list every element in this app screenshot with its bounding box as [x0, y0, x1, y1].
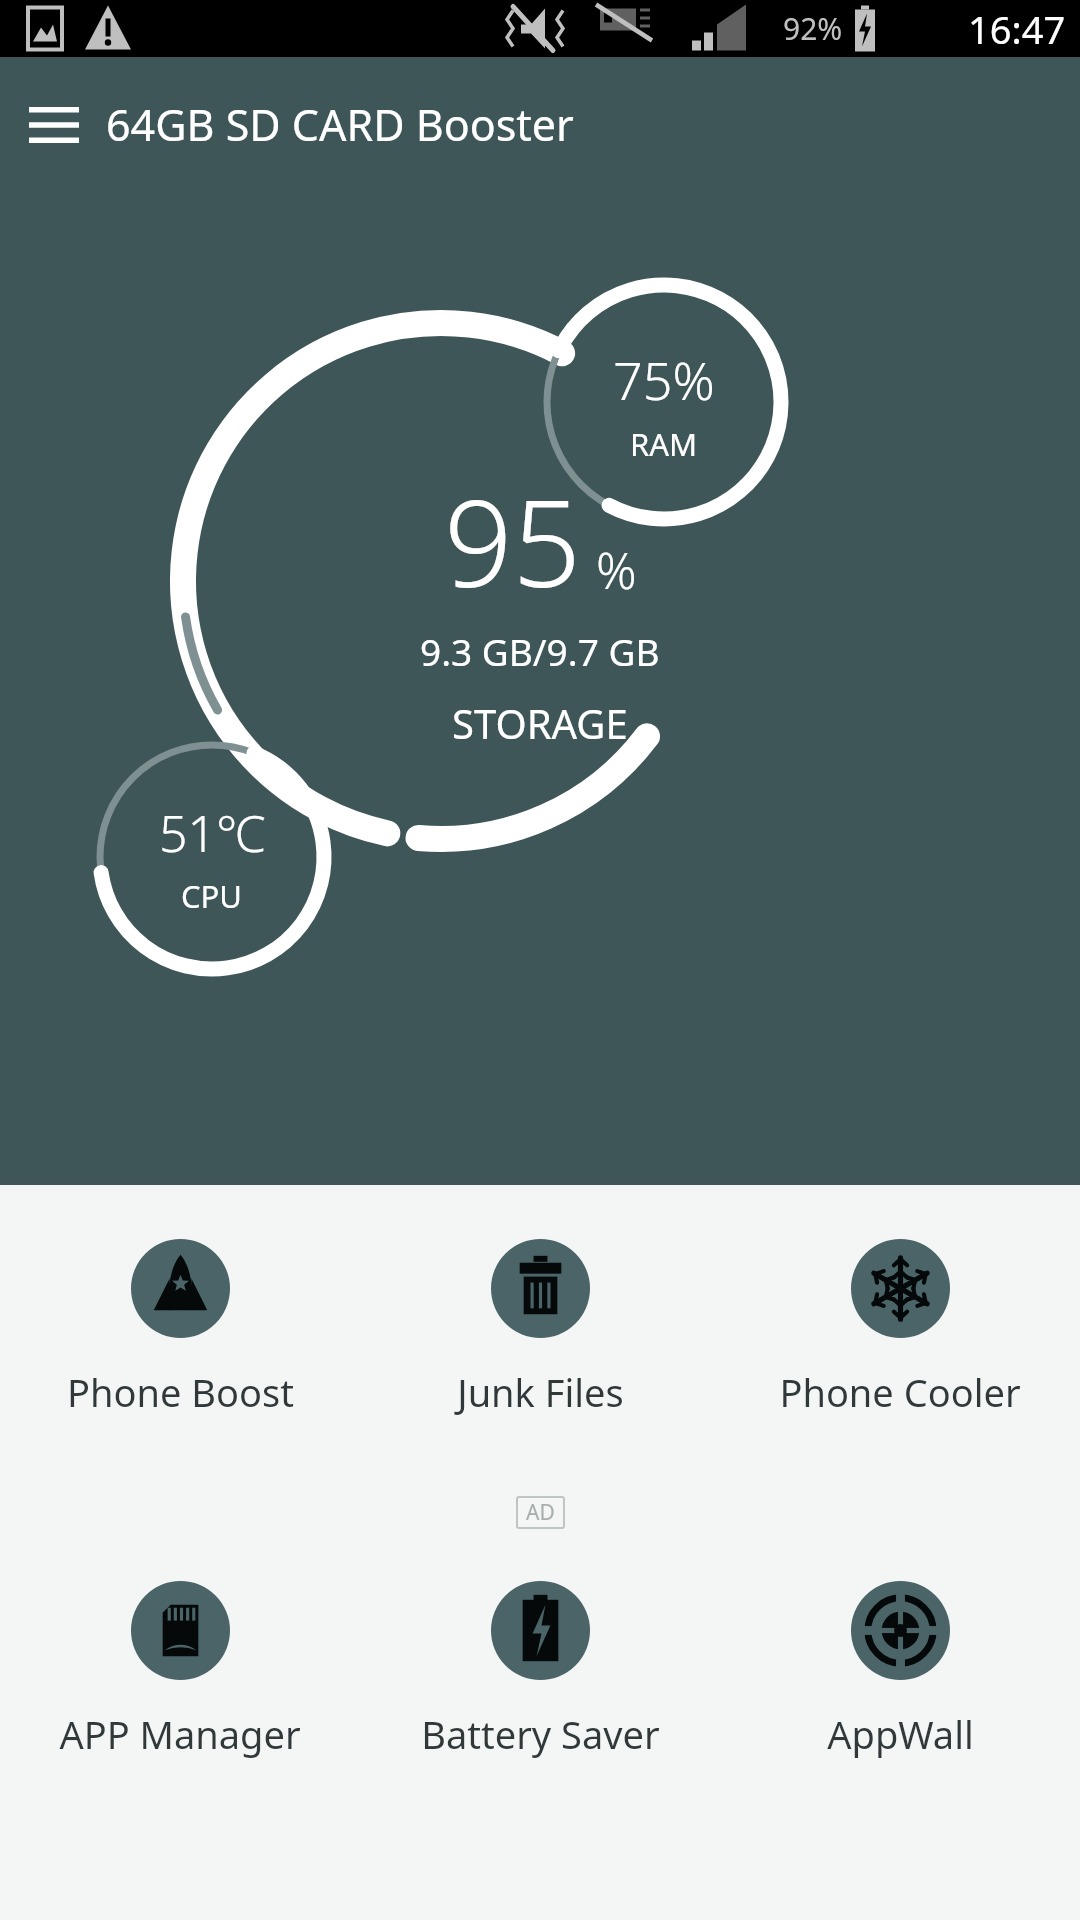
staticText: AppWall — [827, 1708, 974, 1760]
staticText: Phone Cooler — [779, 1366, 1021, 1418]
staticText: 95 — [444, 459, 582, 622]
staticText: Phone Boost — [67, 1366, 294, 1418]
staticText: 16:47 — [968, 3, 1066, 55]
button[interactable]: APP Manager — [0, 1575, 360, 1766]
button[interactable]: Junk Files — [360, 1233, 720, 1424]
button[interactable]: Open navigation menu — [18, 89, 90, 161]
staticText: % — [596, 536, 637, 604]
button[interactable]: Battery Saver — [360, 1575, 720, 1766]
staticText: Junk Files — [457, 1366, 624, 1418]
staticText: 51℃ — [159, 799, 266, 867]
staticText: APP Manager — [59, 1708, 301, 1760]
staticText: RAM — [630, 423, 698, 465]
staticText: AD — [526, 1498, 555, 1527]
staticText: 92% — [783, 8, 843, 49]
staticText: 9.3 GB/9.7 GB — [420, 626, 660, 676]
button[interactable]: Phone Boost — [0, 1233, 360, 1424]
staticText: 75% — [613, 344, 715, 415]
staticText: STORAGE — [452, 696, 628, 750]
button[interactable]: Phone Cooler — [720, 1233, 1080, 1424]
button[interactable]: AppWall — [720, 1575, 1080, 1766]
staticText: Battery Saver — [421, 1708, 660, 1760]
staticText: 64GB SD CARD Booster — [106, 95, 574, 154]
staticText: CPU — [181, 875, 243, 917]
